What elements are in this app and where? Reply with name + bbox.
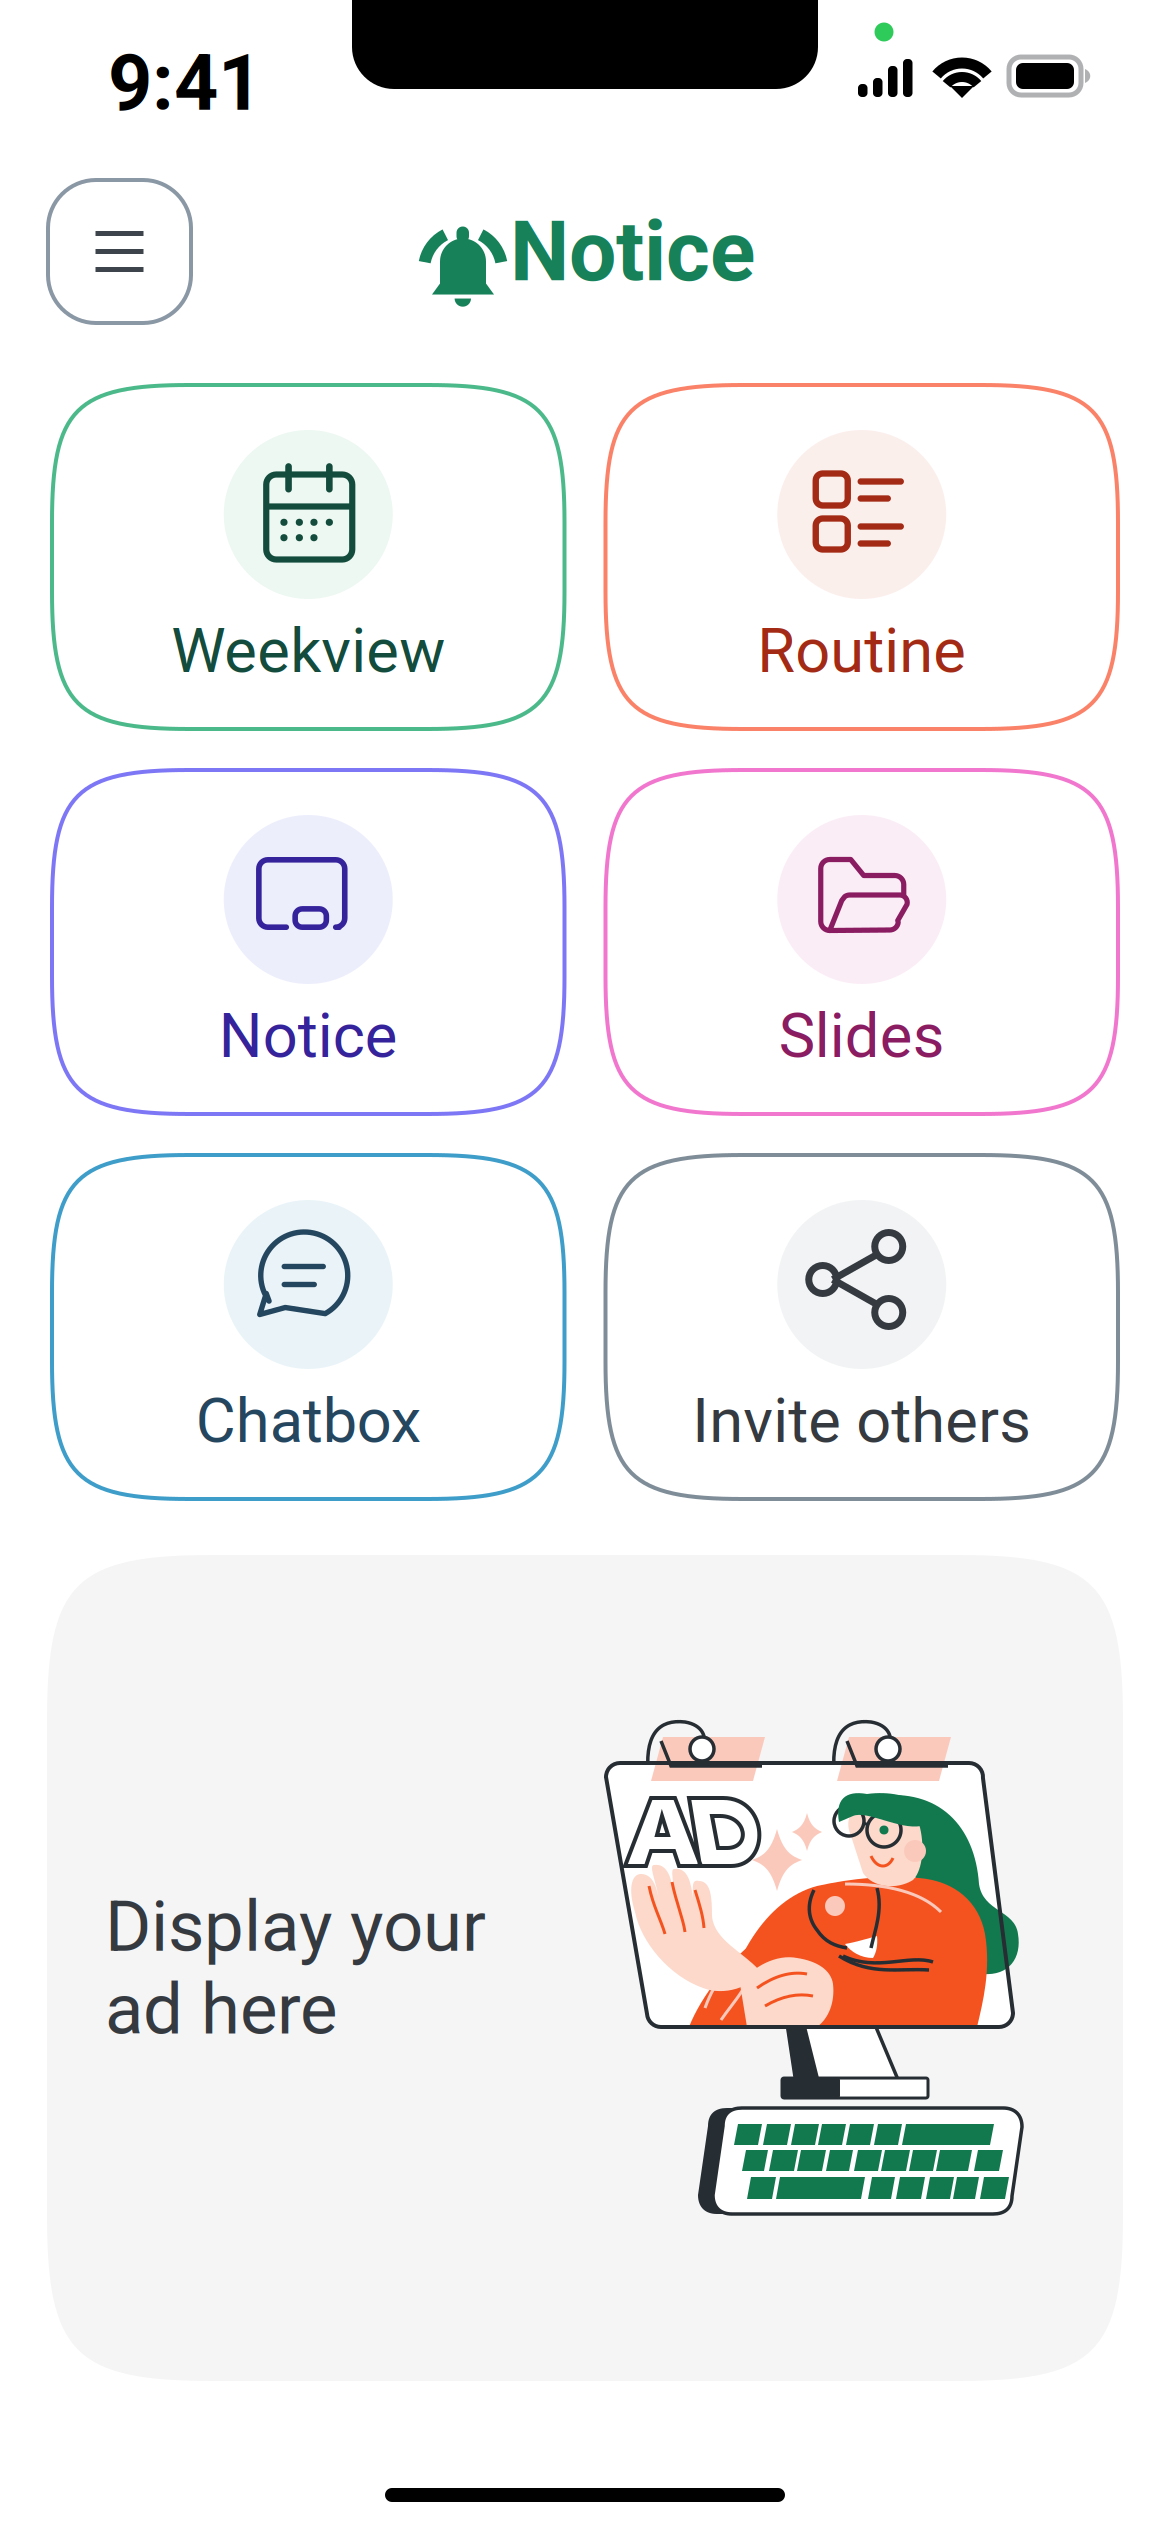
- staticText: Weekview: [171, 615, 445, 687]
- button[interactable]: Routine: [605, 385, 1118, 729]
- staticText: Notice: [219, 1000, 398, 1072]
- staticText: Slides: [779, 1000, 945, 1072]
- button[interactable]: Invite others: [605, 1155, 1118, 1499]
- staticText: Routine: [757, 615, 966, 687]
- button[interactable]: Menu: [48, 180, 191, 323]
- staticText: Display your ad here: [105, 1885, 486, 2051]
- button[interactable]: Display your ad here: [47, 1555, 1123, 2381]
- staticText: 9:41: [108, 38, 262, 129]
- staticText: Notice: [510, 202, 755, 301]
- button[interactable]: Notice: [52, 770, 564, 1114]
- staticText: Invite others: [692, 1385, 1031, 1457]
- button[interactable]: Slides: [605, 770, 1118, 1114]
- staticText: Chatbox: [196, 1385, 421, 1457]
- button[interactable]: Chatbox: [52, 1155, 564, 1499]
- button[interactable]: Weekview: [52, 385, 564, 729]
